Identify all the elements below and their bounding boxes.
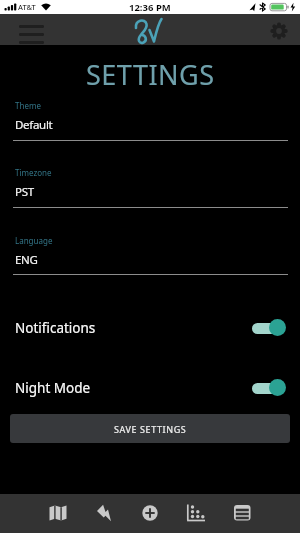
staticText: AT&T xyxy=(18,2,36,12)
staticText: SAVE SETTINGS xyxy=(114,423,187,435)
button[interactable] xyxy=(35,494,81,533)
staticText: Timezone xyxy=(15,167,52,178)
button[interactable]: Theme xyxy=(0,96,300,142)
staticText: Language xyxy=(15,235,53,246)
staticText: Notifications xyxy=(15,319,96,337)
staticText: SETTINGS xyxy=(86,56,215,93)
button[interactable]: Notifications xyxy=(0,310,300,346)
button[interactable]: Language xyxy=(0,231,300,276)
staticText: Night Mode xyxy=(15,379,91,397)
button[interactable]: SAVE SETTINGS xyxy=(10,414,290,443)
staticText: PST xyxy=(15,184,34,200)
button[interactable]: Timezone xyxy=(0,163,300,209)
staticText: Default xyxy=(15,117,53,133)
button[interactable] xyxy=(267,19,291,43)
staticText: ENG xyxy=(15,252,38,268)
button[interactable] xyxy=(127,494,173,533)
button[interactable] xyxy=(173,494,219,533)
button[interactable] xyxy=(219,494,265,533)
button[interactable] xyxy=(19,25,44,44)
staticText: 12:36 PM xyxy=(129,1,171,14)
button[interactable] xyxy=(81,494,127,533)
button[interactable]: Night Mode xyxy=(0,370,300,406)
staticText: Theme xyxy=(15,100,41,111)
